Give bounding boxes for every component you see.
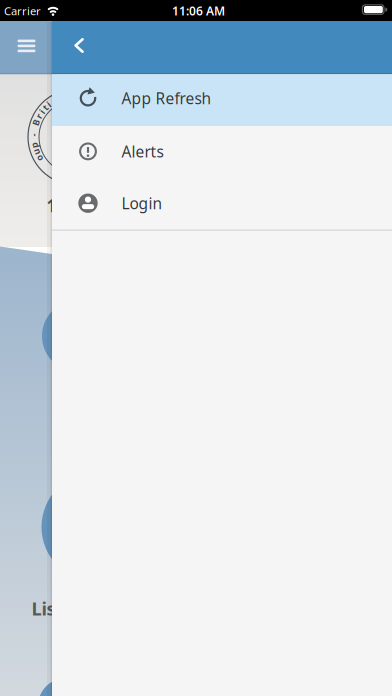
button[interactable]: Alerts <box>52 126 392 178</box>
staticText: 1 <box>46 194 56 217</box>
staticText: i <box>41 105 44 117</box>
button[interactable]: Menu <box>4 24 48 68</box>
staticText: Lis <box>31 596 55 621</box>
staticText: Login <box>121 193 162 214</box>
staticText: - <box>32 129 35 141</box>
staticText: r <box>37 110 41 122</box>
staticText: o <box>36 152 42 164</box>
staticText: t <box>43 101 47 114</box>
staticText: App Refresh <box>121 88 211 109</box>
button[interactable]: Back <box>57 23 101 67</box>
button[interactable]: App Refresh <box>52 74 392 126</box>
button[interactable]: Login <box>52 178 392 230</box>
staticText: Carrier <box>4 3 41 18</box>
staticText: u <box>33 146 39 158</box>
staticText: Alerts <box>121 141 163 162</box>
staticText: p <box>31 139 37 151</box>
staticText: B <box>33 116 39 129</box>
staticText: 11:06 AM <box>172 3 225 19</box>
staticText: i <box>47 98 50 110</box>
